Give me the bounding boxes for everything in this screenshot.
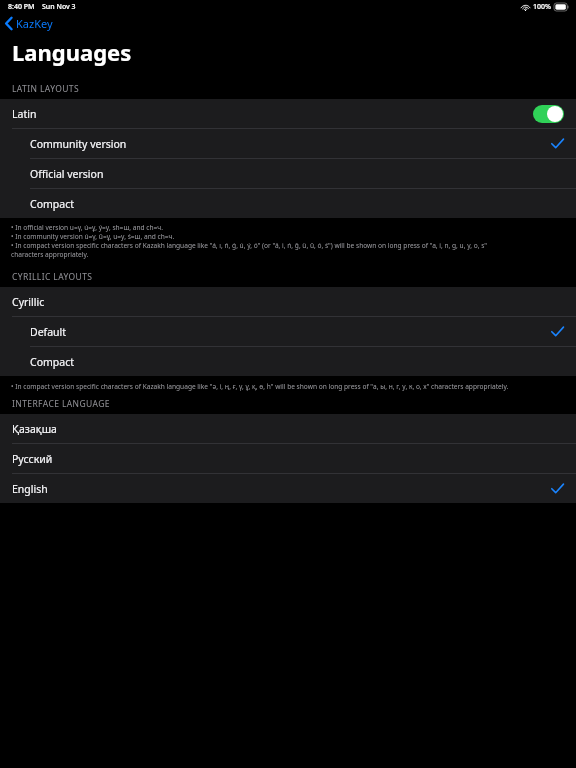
- staticText: English: [12, 482, 551, 496]
- staticText: Compact: [30, 197, 564, 211]
- staticText: CYRILLIC LAYOUTS: [12, 271, 93, 283]
- staticText: 8:40 PM: [8, 2, 35, 12]
- staticText: Latin: [12, 107, 533, 121]
- button[interactable]: KazKey: [5, 14, 53, 32]
- staticText: characters appropriately.: [11, 250, 89, 259]
- staticText: 100%: [533, 2, 551, 12]
- staticText: • In compact version specific characters…: [11, 241, 488, 250]
- staticText: INTERFACE LANGUAGE: [12, 398, 110, 410]
- staticText: Қазақша: [12, 422, 564, 436]
- button[interactable]: Compact: [0, 189, 576, 218]
- other: Wi-Fi: [521, 4, 530, 11]
- staticText: Languages: [12, 37, 132, 67]
- button[interactable]: Cyrillic: [0, 287, 576, 317]
- staticText: Official version: [30, 167, 564, 181]
- button[interactable]: Community version: [0, 129, 576, 159]
- staticText: Compact: [30, 355, 564, 369]
- button[interactable]: Қазақша: [0, 414, 576, 444]
- staticText: Sun Nov 3: [42, 2, 76, 12]
- staticText: Default: [30, 325, 551, 339]
- staticText: • In official version u=ү, ú=ұ, ý=у, sh=…: [11, 223, 163, 232]
- button[interactable]: Compact: [0, 347, 576, 376]
- staticText: Cyrillic: [12, 295, 564, 309]
- staticText: Community version: [30, 137, 551, 151]
- staticText: • In compact version specific characters…: [11, 382, 509, 391]
- button[interactable]: Русский: [0, 444, 576, 474]
- other: Battery: [554, 3, 569, 11]
- staticText: KazKey: [16, 16, 53, 31]
- button[interactable]: Official version: [0, 159, 576, 189]
- staticText: Русский: [12, 452, 564, 466]
- button[interactable]: English: [0, 474, 576, 503]
- button[interactable]: Latin: [0, 99, 576, 129]
- button[interactable]: Latin layout enabled: [533, 105, 564, 123]
- staticText: LATIN LAYOUTS: [12, 83, 80, 95]
- staticText: • In community version ú=ү, ū=ұ, u=у, ś=…: [11, 232, 175, 241]
- button[interactable]: Default: [0, 317, 576, 347]
